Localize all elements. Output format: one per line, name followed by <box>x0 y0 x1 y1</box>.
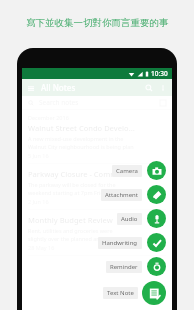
staticText: Parkway Closure - Commute <box>28 169 130 179</box>
staticText: Reminder <box>110 263 138 271</box>
staticText: weekend starting at 7pm Friday <box>28 189 110 196</box>
staticText: Camera <box>116 167 138 175</box>
button[interactable]: Camera <box>112 161 166 180</box>
button[interactable]: Handwriting <box>98 233 166 252</box>
staticText: 寫下並收集一切對你而言重要的事 <box>26 17 169 29</box>
button[interactable]: Text Note <box>103 281 166 305</box>
staticText: slightly over the planned amount <box>28 235 114 242</box>
button[interactable]: Attachment <box>101 185 166 204</box>
staticText: Walnut Street Condo Develo… <box>28 123 135 133</box>
button[interactable]: Reminder <box>106 257 166 276</box>
staticText: Monthly Budget Review <box>28 215 113 225</box>
staticText: 10:30 <box>151 69 168 78</box>
staticText: Audio <box>121 215 138 223</box>
staticText: Handwriting <box>102 239 138 247</box>
other: New text note <box>142 281 166 305</box>
staticText: All Notes <box>41 82 76 93</box>
button[interactable]: Audio <box>117 209 166 228</box>
staticText: Text Note <box>107 289 134 297</box>
staticText: Attachment <box>105 191 138 199</box>
